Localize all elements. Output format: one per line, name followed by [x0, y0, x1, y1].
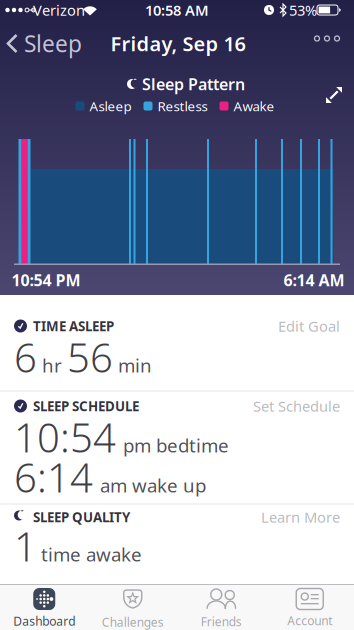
button[interactable]: Pages [314, 36, 339, 41]
staticText: SLEEP QUALITY [33, 508, 130, 526]
staticText: 53% [289, 0, 317, 20]
staticText: time awake [41, 542, 142, 567]
button[interactable]: Learn More [261, 507, 340, 527]
staticText: Friends [201, 613, 242, 629]
button[interactable]: Edit Goal [278, 316, 340, 336]
button[interactable]: Back [7, 28, 82, 58]
staticText: Challenges [102, 614, 164, 630]
staticText: 6:14 AM [283, 269, 344, 291]
staticText: Account [287, 612, 332, 628]
staticText: Edit Goal [278, 316, 340, 336]
staticText: Set Schedule [253, 396, 340, 416]
staticText: Friday, Sep 16 [110, 30, 245, 57]
staticText: 56 [67, 330, 113, 383]
staticText: Awake [233, 97, 274, 115]
staticText: 1 [14, 519, 37, 572]
button[interactable]: Dashboard [0, 584, 88, 630]
staticText: Learn More [261, 507, 340, 527]
staticText: 10:58 AM [145, 0, 209, 20]
staticText: Dashboard [13, 613, 75, 629]
staticText: hr [42, 353, 62, 378]
staticText: Verizon [33, 0, 85, 20]
staticText: 6 [14, 330, 37, 383]
staticText: Restless [157, 97, 207, 115]
button[interactable]: Expand chart [325, 86, 342, 103]
staticText: Asleep [89, 97, 131, 115]
button[interactable]: Set Schedule [253, 396, 340, 416]
staticText: SLEEP SCHEDULE [33, 397, 139, 415]
staticText: pm bedtime [123, 433, 229, 458]
button[interactable]: Challenges [88, 584, 177, 630]
staticText: Sleep [24, 28, 82, 58]
staticText: TIME ASLEEP [33, 317, 114, 335]
staticText: 6:14 [14, 450, 93, 503]
button[interactable]: Friends [177, 584, 265, 630]
staticText: 10:54 PM [11, 269, 80, 291]
staticText: min [118, 353, 152, 378]
button[interactable]: Account [265, 584, 354, 630]
staticText: 10:54 [14, 410, 116, 463]
staticText: am wake up [100, 473, 206, 498]
staticText: Sleep Pattern [142, 73, 245, 95]
